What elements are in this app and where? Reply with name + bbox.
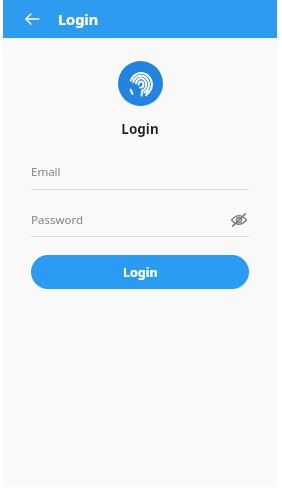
- staticText: Login: [121, 120, 159, 138]
- button[interactable]: Fingerprint: [118, 61, 163, 106]
- staticText: Login: [123, 264, 158, 281]
- button[interactable]: Login: [31, 255, 249, 289]
- button[interactable]: Password: [31, 210, 249, 230]
- staticText: Password: [31, 212, 84, 228]
- button[interactable]: Email: [31, 162, 249, 182]
- button[interactable]: Show password: [229, 210, 249, 230]
- button[interactable]: Back: [19, 6, 45, 32]
- staticText: Email: [31, 164, 61, 180]
- staticText: Login: [58, 9, 99, 29]
